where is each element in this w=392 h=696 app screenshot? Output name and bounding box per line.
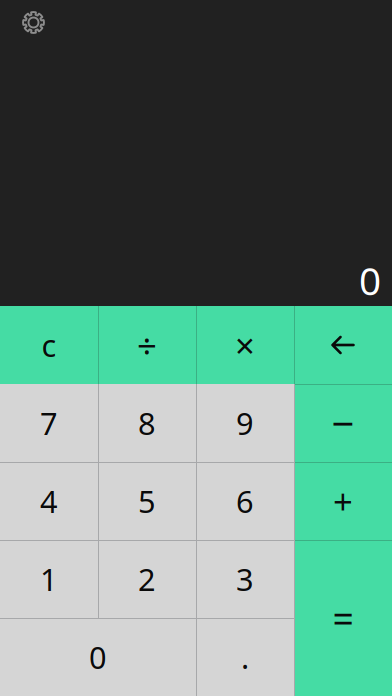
staticText: 9 (236, 403, 254, 443)
button[interactable]: 8 (98, 384, 196, 462)
staticText: 0 (89, 637, 107, 677)
button[interactable]: 4 (0, 462, 98, 540)
staticText: 7 (40, 403, 58, 443)
button[interactable]: 6 (196, 462, 294, 540)
button[interactable]: ÷ (98, 306, 196, 384)
staticText: 5 (138, 481, 156, 521)
staticText: 8 (138, 403, 156, 443)
staticText: − (331, 396, 354, 449)
button[interactable]: + (294, 462, 392, 540)
button[interactable]: 5 (98, 462, 196, 540)
staticText: 0 (359, 255, 381, 306)
button[interactable]: 3 (196, 540, 294, 618)
staticText: ÷ (137, 322, 157, 368)
button[interactable]: 9 (196, 384, 294, 462)
button[interactable]: 1 (0, 540, 98, 618)
staticText: × (235, 322, 255, 368)
staticText: 1 (40, 559, 58, 599)
button[interactable]: = (294, 540, 392, 696)
button[interactable]: 7 (0, 384, 98, 462)
staticText: 6 (236, 481, 254, 521)
button[interactable]: × (196, 306, 294, 384)
button[interactable]: Settings (11, 0, 56, 45)
staticText: 4 (40, 481, 58, 521)
staticText: 3 (236, 559, 254, 599)
button[interactable]: − (294, 384, 392, 462)
button[interactable]: Backspace (294, 306, 392, 384)
staticText: 2 (138, 559, 156, 599)
button[interactable]: 0 (0, 618, 196, 696)
staticText: . (241, 637, 249, 677)
button[interactable]: 2 (98, 540, 196, 618)
staticText: + (333, 478, 353, 524)
staticText: c (41, 325, 56, 365)
button[interactable]: c (0, 306, 98, 384)
staticText: = (332, 593, 353, 643)
button[interactable]: . (196, 618, 294, 696)
